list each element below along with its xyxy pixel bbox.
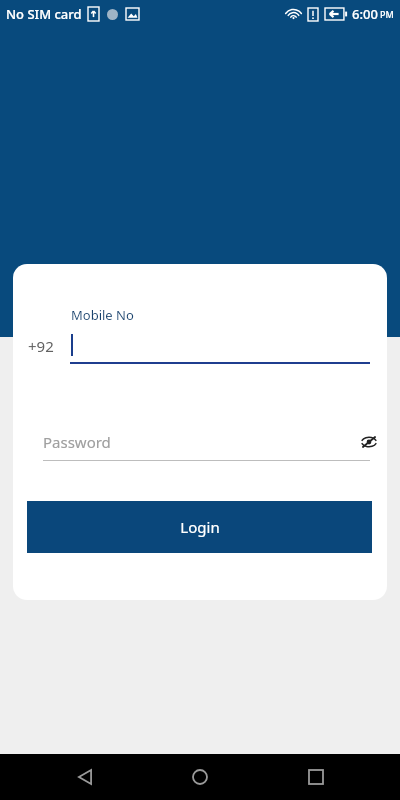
button[interactable]: Login (27, 501, 372, 553)
button[interactable]: Recent apps (285, 754, 347, 800)
staticText: +92 (28, 336, 54, 356)
button[interactable] (70, 326, 370, 366)
staticText: Password (43, 432, 111, 452)
staticText: No SIM card (6, 5, 82, 23)
staticText: Login (180, 517, 220, 537)
staticText: 6:00 (352, 5, 378, 23)
staticText: Mobile No (71, 306, 134, 324)
staticText: PM (380, 8, 394, 20)
button[interactable]: Password (43, 424, 370, 460)
button[interactable]: Back (54, 754, 116, 800)
button[interactable]: Show password (353, 426, 385, 458)
button[interactable]: Home (169, 754, 231, 800)
